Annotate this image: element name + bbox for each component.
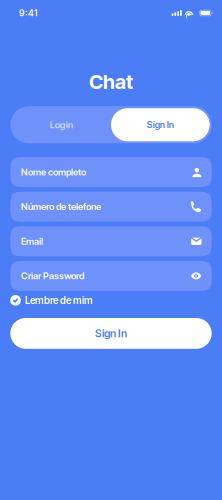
button[interactable]: Lembre de mim [0, 295, 222, 306]
staticText: Sign In [147, 119, 174, 130]
button[interactable]: Nome completo [10, 157, 212, 187]
staticText: Criar Password [21, 270, 84, 282]
button[interactable]: Número de telefone [10, 192, 212, 222]
button[interactable]: Criar Password [10, 261, 212, 291]
staticText: Login [50, 119, 74, 130]
button[interactable]: Sign In [111, 108, 210, 141]
staticText: Nome completo [21, 166, 86, 178]
button[interactable]: Email [10, 226, 212, 256]
staticText: Email [21, 236, 43, 247]
staticText: 9:41 [19, 7, 37, 18]
button[interactable]: Sign In [0, 318, 222, 349]
staticText: Número de telefone [21, 201, 101, 212]
staticText: Lembre de mim [25, 294, 93, 306]
staticText: Chat [89, 70, 133, 94]
button[interactable]: Login [12, 108, 111, 141]
staticText: Sign In [95, 327, 127, 340]
